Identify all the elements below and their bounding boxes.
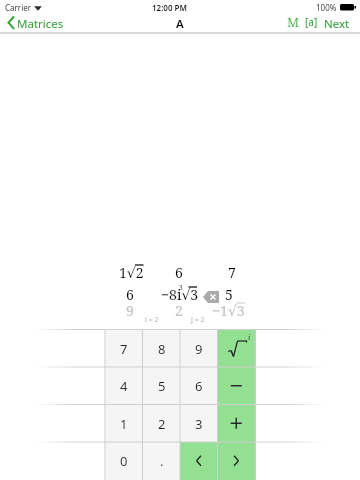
staticText: −8i√3 — [161, 285, 199, 304]
button[interactable]: . — [143, 442, 181, 480]
staticText: i — [248, 333, 251, 343]
staticText: . — [160, 452, 164, 470]
staticText: 8 — [158, 340, 166, 358]
staticText: A — [176, 16, 184, 32]
staticText: M — [287, 13, 300, 31]
staticText: 2 — [158, 415, 166, 433]
button[interactable]: 6 — [180, 367, 218, 405]
button[interactable]: 1 — [105, 405, 143, 443]
button[interactable]: M — [283, 11, 303, 33]
staticText: 0 — [120, 452, 128, 470]
button[interactable]: 4 — [105, 367, 143, 405]
staticText: Next — [324, 16, 350, 32]
staticText: 4 — [120, 377, 128, 395]
staticText: 3 — [179, 283, 183, 292]
button[interactable]: 7 — [105, 330, 143, 368]
staticText: 6 — [195, 377, 203, 395]
button[interactable]: 5 — [143, 367, 181, 405]
button[interactable]: 8 — [143, 330, 181, 368]
button[interactable] — [218, 442, 256, 480]
staticText: −1√3 — [212, 301, 245, 320]
button[interactable]: 9 — [180, 330, 218, 368]
staticText: 6 — [126, 285, 134, 304]
staticText: j = 2 — [191, 315, 205, 325]
button[interactable] — [218, 330, 256, 368]
button[interactable]: 3 — [180, 405, 218, 443]
staticText: 100% — [316, 2, 337, 13]
staticText: 12:00 PM — [152, 2, 187, 13]
button[interactable]: [a] — [303, 11, 320, 33]
staticText: 5 — [225, 285, 233, 304]
staticText: 1 — [120, 415, 128, 433]
staticText: Carrier — [5, 2, 32, 13]
staticText: 9 — [126, 301, 134, 320]
button[interactable] — [180, 442, 218, 480]
button[interactable] — [201, 288, 221, 305]
button[interactable]: Matrices — [0, 13, 64, 33]
staticText: 7 — [228, 263, 236, 282]
staticText: Matrices — [17, 16, 64, 32]
button[interactable] — [218, 405, 256, 443]
staticText: 1√2 — [119, 263, 144, 282]
button[interactable]: 0 — [105, 442, 143, 480]
staticText: 5 — [158, 377, 166, 395]
staticText: 2 — [175, 301, 183, 320]
staticText: 7 — [120, 340, 128, 358]
button[interactable]: Next — [322, 13, 354, 33]
button[interactable] — [218, 367, 256, 405]
staticText: 6 — [175, 263, 183, 282]
button[interactable]: 2 — [143, 405, 181, 443]
staticText: i = 2 — [145, 315, 159, 325]
staticText: 3 — [195, 415, 203, 433]
staticText: 9 — [195, 340, 203, 358]
staticText: [a] — [305, 15, 318, 29]
